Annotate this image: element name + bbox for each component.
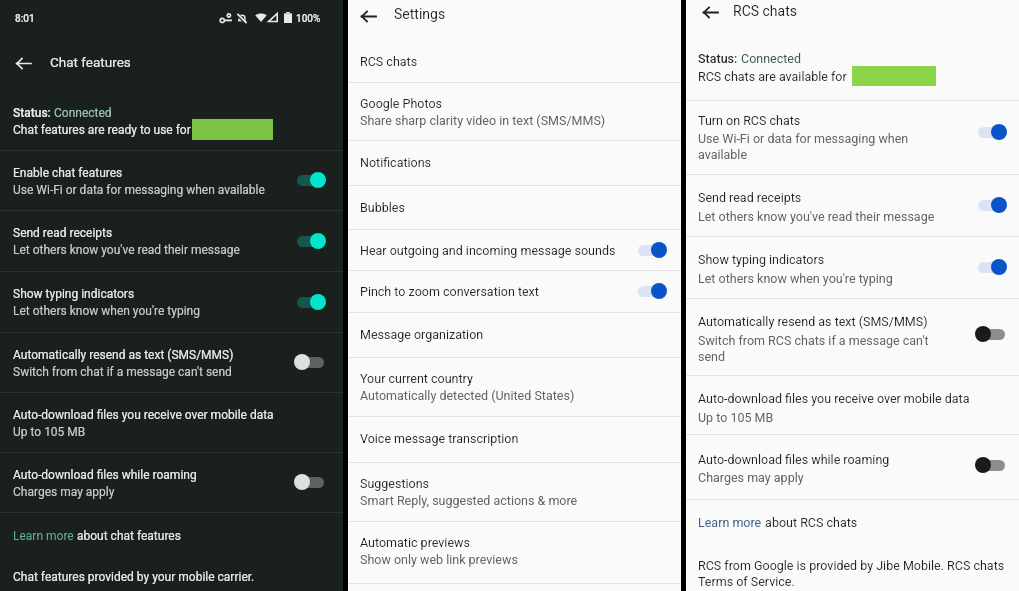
staticText: Connected: [54, 106, 112, 120]
button[interactable]: Navigate up: [353, 1, 383, 31]
button[interactable]: Learn more: [686, 500, 1019, 544]
staticText: Learn more: [698, 515, 762, 530]
button[interactable]: Switch off: [294, 354, 326, 370]
staticText: Send read receipts: [698, 190, 802, 205]
button[interactable]: Auto-download files while roaming: [0, 453, 343, 512]
button[interactable]: Suggestions: [348, 463, 681, 521]
button[interactable]: Auto-download files while roaming: [686, 435, 1019, 499]
button[interactable]: Switch on: [975, 197, 1007, 213]
staticText: Status:: [13, 106, 54, 120]
button[interactable]: Auto-download files you receive over mob…: [0, 393, 343, 452]
button[interactable]: Enable chat features: [0, 151, 343, 210]
staticText: Connected: [741, 51, 802, 66]
staticText: Chat features are ready to use for: [13, 123, 194, 137]
button[interactable]: Switch off: [975, 457, 1007, 473]
button[interactable]: Hear outgoing and incoming message sound…: [348, 230, 681, 270]
button[interactable]: Your current country: [348, 358, 681, 416]
button[interactable]: Turn on RCS chats: [686, 101, 1019, 174]
staticText: RCS chats: [733, 3, 797, 19]
staticText: Charges may apply: [698, 470, 804, 485]
button[interactable]: Auto-download files you receive over mob…: [686, 376, 1019, 434]
staticText: Show typing indicators: [13, 287, 135, 301]
staticText: Your current country: [360, 371, 473, 386]
staticText: Pinch to zoom conversation text: [360, 284, 539, 299]
staticText: Use Wi-Fi or data for messaging when ava…: [13, 183, 265, 197]
staticText: Switch from chat if a message can't send: [13, 365, 232, 379]
staticText: Share sharp clarity video in text (SMS/M…: [360, 113, 606, 128]
staticText: about chat features: [74, 529, 181, 543]
button[interactable]: Switch on: [635, 242, 667, 258]
button[interactable]: Switch off: [294, 474, 326, 490]
staticText: Automatic previews: [360, 535, 470, 550]
staticText: Switch from RCS chats if a message can't…: [698, 333, 929, 364]
staticText: 8:01: [15, 13, 35, 25]
button[interactable]: Switch on: [975, 124, 1007, 140]
staticText: Auto-download files you receive over mob…: [13, 408, 274, 422]
staticText: Show only web link previews: [360, 552, 518, 567]
staticText: 100%: [296, 13, 321, 25]
button[interactable]: Navigate up: [695, 0, 725, 27]
button[interactable]: Automatically resend as text (SMS/MMS): [0, 333, 343, 392]
staticText: Message organization: [360, 327, 484, 342]
button[interactable]: Switch on: [294, 172, 326, 188]
staticText: Up to 105 MB: [13, 425, 86, 439]
button[interactable]: Switch off: [975, 326, 1007, 342]
button[interactable]: Bubbles: [348, 186, 681, 229]
staticText: Bubbles: [360, 200, 405, 215]
staticText: Let others know when you're typing: [13, 304, 200, 318]
staticText: Up to 105 MB: [698, 410, 774, 425]
staticText: Auto-download files while roaming: [698, 452, 890, 467]
staticText: Chat features: [50, 54, 131, 70]
staticText: Automatically detected (United States): [360, 388, 575, 403]
button[interactable]: Learn more: [0, 513, 343, 559]
staticText: Chat features provided by your mobile ca…: [13, 570, 255, 584]
staticText: Use Wi-Fi or data for messaging when ava…: [698, 131, 909, 162]
staticText: RCS chats are available for: [698, 69, 850, 84]
button[interactable]: Pinch to zoom conversation text: [348, 271, 681, 312]
button[interactable]: Navigate up: [8, 48, 38, 78]
button[interactable]: Notifications: [348, 141, 681, 185]
staticText: Send read receipts: [13, 226, 113, 240]
button[interactable]: Google Photos: [348, 83, 681, 140]
staticText: Let others know when you're typing: [698, 271, 893, 286]
button[interactable]: Switch on: [294, 233, 326, 249]
staticText: Hear outgoing and incoming message sound…: [360, 243, 616, 258]
staticText: Show typing indicators: [698, 252, 825, 267]
staticText: Let others know you've read their messag…: [13, 243, 240, 257]
staticText: Notifications: [360, 155, 432, 170]
staticText: Learn more: [13, 529, 74, 543]
button[interactable]: Voice message transcription: [348, 417, 681, 462]
staticText: RCS from Google is provided by Jibe Mobi…: [698, 558, 1005, 589]
staticText: Google Photos: [360, 96, 443, 111]
staticText: Auto-download files while roaming: [13, 468, 197, 482]
staticText: Voice message transcription: [360, 431, 519, 446]
staticText: Auto-download files you receive over mob…: [698, 391, 970, 406]
staticText: Smart Reply, suggested actions & more: [360, 493, 578, 508]
button[interactable]: Send read receipts: [686, 175, 1019, 236]
staticText: Status:: [698, 51, 741, 66]
staticText: Turn on RCS chats: [698, 113, 801, 128]
staticText: RCS chats: [360, 54, 418, 69]
staticText: Enable chat features: [13, 166, 123, 180]
staticText: Settings: [394, 6, 446, 22]
button[interactable]: Automatically resend as text (SMS/MMS): [686, 299, 1019, 375]
button[interactable]: Message organization: [348, 313, 681, 357]
staticText: Automatically resend as text (SMS/MMS): [698, 314, 928, 329]
button[interactable]: Send read receipts: [0, 211, 343, 271]
button[interactable]: Show typing indicators: [0, 272, 343, 332]
staticText: about RCS chats: [762, 515, 858, 530]
button[interactable]: Automatic previews: [348, 522, 681, 583]
staticText: Suggestions: [360, 476, 430, 491]
button[interactable]: RCS chats: [348, 40, 681, 82]
button[interactable]: Switch on: [975, 259, 1007, 275]
staticText: Charges may apply: [13, 485, 115, 499]
staticText: Automatically resend as text (SMS/MMS): [13, 348, 234, 362]
button[interactable]: Switch on: [294, 294, 326, 310]
button[interactable]: Show typing indicators: [686, 237, 1019, 298]
staticText: Let others know you've read their messag…: [698, 209, 935, 224]
button[interactable]: Switch on: [635, 283, 667, 299]
